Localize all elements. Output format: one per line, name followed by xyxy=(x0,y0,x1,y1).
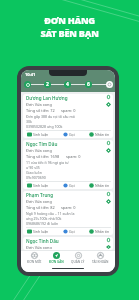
button[interactable]: ĐƠN MỚI xyxy=(26,252,43,264)
staticText: 30k xyxy=(26,119,32,124)
staticText: Đơn Vừa xong xyxy=(26,102,52,107)
staticText: Sinh luận xyxy=(33,183,49,188)
staticText: Tổng số tiền: 72 xyxy=(26,108,55,113)
button[interactable]: Ngọc Tím Dâu xyxy=(23,140,113,189)
staticText: SÁT BÊN BẠN xyxy=(40,27,99,40)
staticText: Nhắn tin xyxy=(95,229,110,234)
staticText: 2 xyxy=(46,81,49,88)
button[interactable]: Gọi xyxy=(62,132,76,137)
staticText: Đơn Vừa xong xyxy=(26,245,52,249)
staticText: TÀI KHOẢN xyxy=(92,260,109,264)
staticText: 4 xyxy=(66,81,69,88)
button[interactable]: 6 xyxy=(85,81,92,88)
button[interactable]: Sinh luận xyxy=(26,229,50,234)
staticText: ĐƠN HÀNG xyxy=(44,14,95,27)
button[interactable]: Sinh luận xyxy=(26,183,50,188)
button[interactable]: 2 xyxy=(44,81,51,88)
staticText: Dương Lan Hương xyxy=(26,95,68,101)
button[interactable] xyxy=(24,81,31,88)
button[interactable]: Copy xyxy=(107,95,110,99)
button[interactable]: Gọi xyxy=(62,183,76,188)
staticText: spam: 0 xyxy=(61,108,76,113)
staticText: Giao luôn xyxy=(26,170,42,175)
staticText: Đơn Vừa xong xyxy=(26,199,52,204)
staticText: QUẢN LÝ xyxy=(71,260,85,264)
button[interactable]: Dương Lan Hương xyxy=(23,94,113,138)
staticText: 0398502828 ưng 100k xyxy=(26,124,63,129)
staticText: Phạm Trung xyxy=(26,192,54,198)
button[interactable]: Search xyxy=(106,81,113,88)
button[interactable]: Nhắn tin xyxy=(88,183,111,188)
button[interactable]: 4 xyxy=(64,81,71,88)
staticText: 11 cửa tiếc ít 96 ngt gia tư xyxy=(26,160,69,165)
staticText: Gọi xyxy=(69,229,75,234)
button[interactable]: Phạm Trung xyxy=(23,191,113,235)
button[interactable]: Copy xyxy=(107,192,110,196)
staticText: ư 90 s35 xyxy=(26,165,40,170)
button[interactable]: Order status xyxy=(106,245,111,249)
button[interactable]: Ngọc Tình Dâu xyxy=(23,237,113,250)
staticText: 09c9070690 xyxy=(26,175,46,180)
staticText: Tổng số tiền: 1698 xyxy=(26,154,60,159)
staticText: Nhắn tin xyxy=(95,132,110,137)
staticText: Tổng số tiền: 82 xyxy=(26,205,55,210)
staticText: Sinh luận xyxy=(33,229,49,234)
staticText: spam: 0 xyxy=(61,205,76,210)
button[interactable]: Nhắn tin xyxy=(88,229,111,234)
button[interactable]: Copy xyxy=(107,238,110,242)
staticText: Đơn Vừa xong xyxy=(26,148,52,153)
staticText: ĐƠN MỚI xyxy=(27,260,42,264)
staticText: Đơn gấp 388 du rọi tố câu mó xyxy=(26,114,75,119)
button[interactable]: Gọi xyxy=(62,229,76,234)
button[interactable]: Order status xyxy=(106,199,111,204)
button[interactable]: ĐƠN GẦN xyxy=(48,252,65,264)
staticText: ĐƠN GẦN xyxy=(49,260,64,264)
staticText: 0968686192 đi luôn xyxy=(26,221,59,226)
staticText: Gọi xyxy=(69,132,75,137)
staticText: 6 xyxy=(87,81,90,88)
staticText: spam: 0 xyxy=(66,154,81,159)
button[interactable]: TÀI KHOẢN xyxy=(91,252,110,264)
staticText: Ngõ 9 hoàng cầu – 11 xuân la xyxy=(26,211,75,216)
button[interactable]: Sinh luận xyxy=(26,132,50,137)
staticText: Ngọc Tím Dâu xyxy=(26,141,58,147)
staticText: Sinh luận xyxy=(33,132,49,137)
staticText: 10:41 xyxy=(25,72,36,77)
button[interactable]: Copy xyxy=(107,141,110,145)
button[interactable]: QUẢN LÝ xyxy=(70,252,86,264)
staticText: Gọi xyxy=(69,183,75,188)
staticText: ưng 29+100k nhà 50k xyxy=(26,216,62,221)
button[interactable]: Order status xyxy=(106,102,111,107)
button[interactable]: Nhắn tin xyxy=(88,132,111,137)
staticText: Nhắn tin xyxy=(95,183,110,188)
button[interactable]: Order status xyxy=(106,148,111,153)
staticText: Ngọc Tình Dâu xyxy=(26,238,59,244)
